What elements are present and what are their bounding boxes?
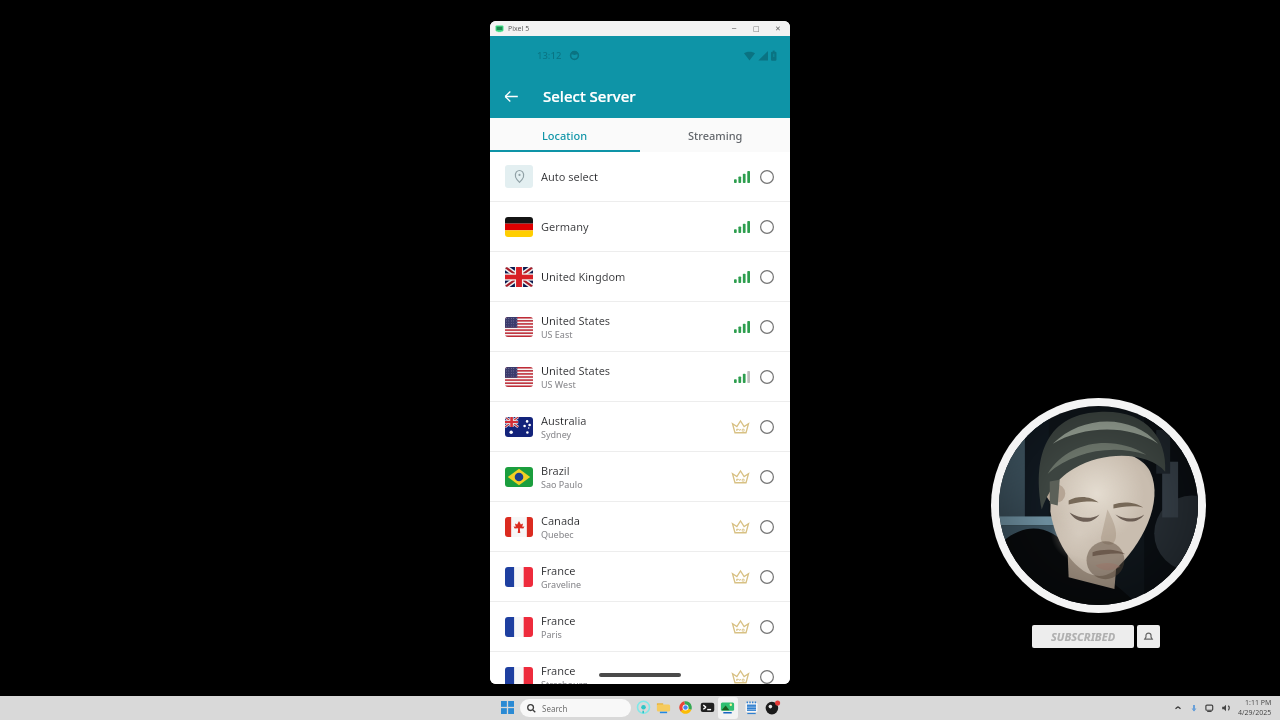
staticText: Sydney bbox=[541, 428, 572, 440]
button[interactable]: United Kingdom bbox=[490, 252, 790, 302]
staticText: United Kingdom bbox=[541, 269, 626, 284]
button[interactable]: Germany bbox=[490, 202, 790, 252]
staticText: France bbox=[541, 613, 576, 628]
button[interactable]: Minimize bbox=[723, 21, 745, 36]
button[interactable]: Auto select bbox=[490, 152, 790, 202]
staticText: United States bbox=[541, 313, 611, 328]
staticText: Search bbox=[542, 703, 568, 714]
staticText: US West bbox=[541, 378, 576, 390]
staticText: Graveline bbox=[541, 578, 582, 590]
button[interactable]: Taskbar app bbox=[636, 700, 651, 715]
button[interactable]: France bbox=[490, 602, 790, 652]
button[interactable]: United States bbox=[490, 302, 790, 352]
button[interactable]: Taskbar app bbox=[720, 700, 735, 715]
staticText: United States bbox=[541, 363, 611, 378]
button[interactable]: Brazil bbox=[490, 452, 790, 502]
button[interactable]: Notifications bbox=[1137, 625, 1160, 648]
button[interactable]: Maximize bbox=[745, 21, 767, 36]
staticText: Auto select bbox=[541, 169, 599, 184]
button[interactable]: Taskbar app bbox=[656, 700, 671, 715]
staticText: 1:11 PM bbox=[1245, 698, 1272, 708]
button[interactable]: Volume bbox=[1221, 703, 1231, 713]
staticText: ✕ bbox=[775, 25, 781, 33]
button[interactable]: Updates bbox=[1189, 703, 1199, 713]
staticText: 4/29/2025 bbox=[1238, 708, 1272, 718]
button[interactable]: Canada bbox=[490, 502, 790, 552]
staticText: US East bbox=[541, 328, 573, 340]
button[interactable]: Taskbar app bbox=[678, 700, 693, 715]
staticText: □ bbox=[753, 25, 760, 33]
staticText: Quebec bbox=[541, 528, 574, 540]
button[interactable]: Taskbar app bbox=[700, 700, 715, 715]
staticText: France bbox=[541, 563, 576, 578]
staticText: Sao Paulo bbox=[541, 478, 583, 490]
button[interactable]: Start bbox=[501, 701, 514, 714]
staticText: Paris bbox=[541, 628, 562, 640]
button[interactable]: Taskbar app bbox=[744, 700, 759, 715]
staticText: Strasbourg bbox=[541, 678, 588, 684]
button[interactable]: Close bbox=[767, 21, 789, 36]
staticText: Pixel 5 bbox=[508, 24, 530, 34]
staticText: SUBSCRIBED bbox=[1051, 629, 1116, 644]
button[interactable]: Location bbox=[490, 118, 640, 152]
staticText: Brazil bbox=[541, 463, 570, 478]
button[interactable]: France bbox=[490, 552, 790, 602]
button[interactable]: United States bbox=[490, 352, 790, 402]
staticText: Australia bbox=[541, 413, 587, 428]
staticText: Germany bbox=[541, 219, 589, 234]
button[interactable]: SUBSCRIBED bbox=[1032, 625, 1134, 648]
button[interactable]: Search bbox=[520, 699, 631, 717]
staticText: 13:12 bbox=[537, 49, 562, 62]
staticText: ─ bbox=[732, 25, 737, 33]
staticText: Canada bbox=[541, 513, 581, 528]
staticText: Select Server bbox=[543, 86, 636, 106]
button[interactable]: Show hidden icons bbox=[1173, 703, 1183, 713]
button[interactable]: Network bbox=[1205, 703, 1216, 714]
button[interactable]: France bbox=[490, 652, 790, 684]
staticText: France bbox=[541, 663, 576, 678]
button[interactable]: Taskbar app bbox=[765, 700, 780, 715]
button[interactable]: Australia bbox=[490, 402, 790, 452]
staticText: Location bbox=[542, 128, 588, 143]
button[interactable]: Back bbox=[497, 82, 525, 110]
button[interactable]: Streaming bbox=[640, 118, 790, 152]
staticText: Streaming bbox=[688, 128, 743, 143]
